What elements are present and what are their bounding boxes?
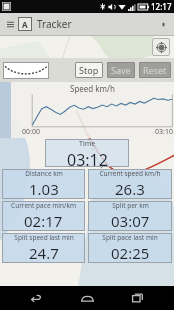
button[interactable]: Show chart [3,62,49,79]
button[interactable]: Split pace last min [88,233,172,263]
button[interactable]: Current pace min/km [2,201,85,231]
staticText: Speed km/h [70,83,116,94]
staticText: Current pace min/km [11,201,76,210]
button[interactable]: Split speed last min [2,233,85,263]
button[interactable]: Open navigation drawer [2,16,18,32]
button[interactable]: Current speed km/h [88,169,172,199]
button[interactable]: Back [21,286,51,310]
staticText: Current speed km/h [99,169,161,178]
button[interactable]: My location [152,38,170,56]
staticText: A [22,19,28,30]
button[interactable]: Reset [139,62,171,78]
button[interactable]: Recent apps [123,286,153,310]
staticText: 03:12 [67,149,108,167]
button[interactable]: Distance km [2,169,85,199]
staticText: 00:00 [22,127,40,137]
staticText: 1.03 [29,179,59,199]
staticText: 12:17 [151,1,172,12]
staticText: Split per km [112,201,149,210]
staticText: Stop [79,64,99,76]
button[interactable]: Home [72,286,102,310]
staticText: 03:10 [155,127,173,137]
button[interactable]: Time [45,139,129,167]
staticText: 02:25 [111,243,150,263]
staticText: 02:17 [24,211,63,231]
staticText: 03:07 [111,211,150,231]
button[interactable]: Stop [75,62,103,78]
staticText: Distance km [25,169,63,178]
button[interactable]: Save [107,62,135,78]
staticText: Save [111,64,131,76]
staticText: 26.3 [115,179,145,199]
button[interactable]: More options [154,15,172,33]
staticText: Tracker [37,17,72,31]
staticText: Split speed last min [14,233,74,242]
staticText: 24.7 [29,243,59,263]
staticText: Reset [143,64,167,76]
staticText: Time [79,139,96,149]
staticText: Split pace last min [102,233,158,242]
button[interactable]: Split per km [88,201,172,231]
